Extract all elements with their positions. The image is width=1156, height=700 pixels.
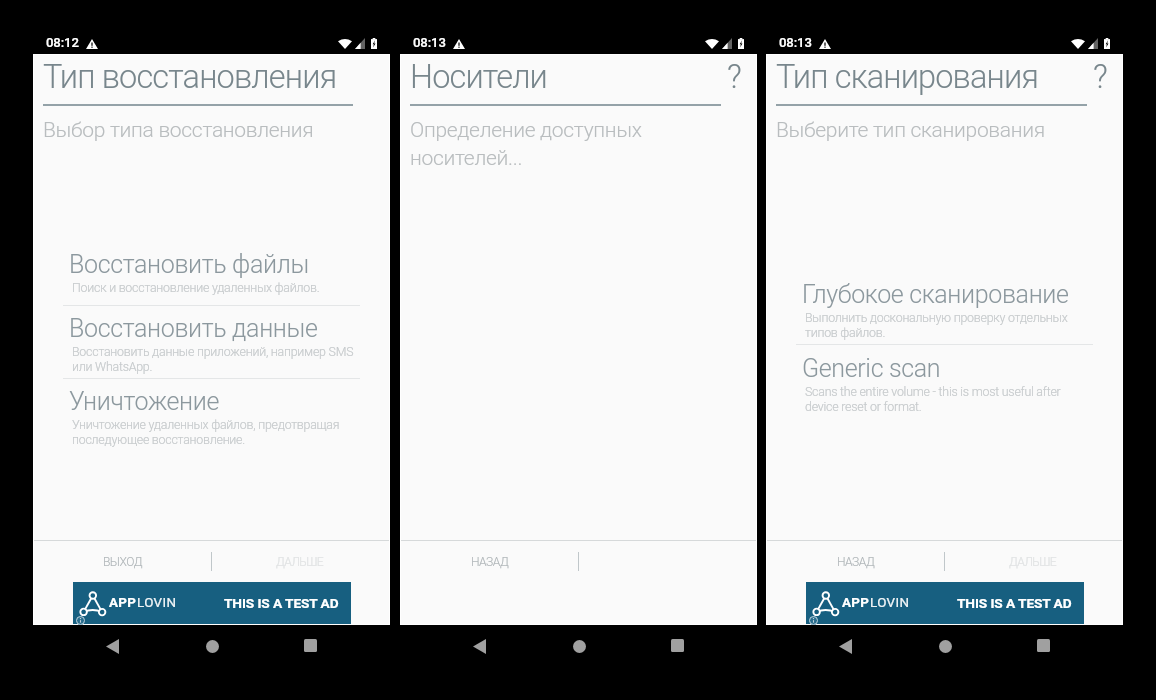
button[interactable]: Home bbox=[565, 625, 593, 670]
staticText: THIS IS A TEST AD bbox=[957, 595, 1072, 611]
button[interactable]: ДАЛЬШЕ bbox=[211, 541, 389, 582]
button[interactable]: Back bbox=[98, 625, 126, 670]
button[interactable]: Восстановить данные bbox=[34, 314, 389, 374]
staticText: ? bbox=[1093, 58, 1108, 96]
staticText: Выполнить доскональную проверку отдельны… bbox=[805, 310, 1093, 340]
button[interactable]: НАЗАД bbox=[767, 541, 944, 582]
button[interactable]: Help bbox=[1080, 57, 1120, 97]
staticText: 08:13 bbox=[413, 35, 446, 50]
staticText: Восстановить файлы bbox=[69, 250, 309, 279]
button[interactable]: Уничтожение bbox=[34, 387, 389, 447]
other: Ad info bbox=[809, 616, 818, 625]
button[interactable]: Глубокое сканирование bbox=[767, 280, 1122, 340]
staticText: ? bbox=[727, 58, 742, 96]
staticText: Определение доступных носителей... bbox=[410, 118, 707, 170]
staticText: НАЗАД bbox=[837, 555, 875, 569]
button[interactable]: Recents bbox=[296, 625, 324, 670]
staticText: Восстановить данные приложений, например… bbox=[72, 344, 360, 374]
staticText: Восстановить данные bbox=[69, 314, 318, 343]
button[interactable]: ДАЛЬШЕ bbox=[944, 541, 1122, 582]
staticText: Тип восстановления bbox=[43, 58, 337, 96]
button[interactable]: APP bbox=[806, 582, 1084, 624]
button[interactable]: Home bbox=[198, 625, 226, 670]
staticText: APP bbox=[842, 595, 870, 611]
staticText: LOVIN bbox=[870, 595, 910, 611]
button[interactable]: Generic scan bbox=[767, 354, 1122, 414]
staticText: 08:12 bbox=[46, 35, 79, 50]
staticText: Уничтожение bbox=[69, 387, 220, 416]
button[interactable]: Home bbox=[931, 625, 959, 670]
button[interactable]: Back bbox=[465, 625, 493, 670]
staticText: LOVIN bbox=[137, 595, 177, 611]
button[interactable]: Recents bbox=[1029, 625, 1057, 670]
button[interactable]: Back bbox=[831, 625, 859, 670]
staticText: Scans the entire volume - this is most u… bbox=[805, 384, 1093, 414]
staticText: APP bbox=[109, 595, 137, 611]
staticText: Generic scan bbox=[802, 354, 941, 383]
staticText: ДАЛЬШЕ bbox=[1009, 555, 1057, 569]
staticText: Выберите тип сканирования bbox=[776, 118, 1045, 143]
staticText: Поиск и восстановление удаленных файлов. bbox=[72, 280, 320, 295]
other: Ad info bbox=[76, 616, 85, 625]
staticText: Выбор типа восстановления bbox=[43, 118, 314, 143]
staticText: Уничтожение удаленных файлов, предотвращ… bbox=[72, 417, 360, 447]
staticText: Глубокое сканирование bbox=[802, 280, 1069, 309]
button[interactable]: APP bbox=[73, 582, 351, 624]
staticText: НАЗАД bbox=[471, 555, 509, 569]
staticText: THIS IS A TEST AD bbox=[224, 595, 339, 611]
button[interactable]: ВЫХОД bbox=[34, 541, 211, 582]
button[interactable]: Help bbox=[714, 57, 754, 97]
staticText: Носители bbox=[410, 58, 548, 96]
button[interactable]: Восстановить файлы bbox=[34, 250, 389, 295]
button[interactable]: НАЗАД bbox=[401, 541, 578, 582]
staticText: ДАЛЬШЕ bbox=[276, 555, 324, 569]
staticText: 08:13 bbox=[779, 35, 812, 50]
button[interactable]: Recents bbox=[663, 625, 691, 670]
staticText: Тип сканирования bbox=[776, 58, 1039, 96]
staticText: ВЫХОД bbox=[103, 555, 142, 569]
